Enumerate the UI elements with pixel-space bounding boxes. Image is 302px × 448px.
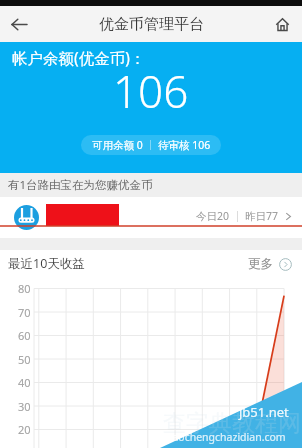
staticText: 今日20 — [196, 209, 230, 223]
staticText: 40 — [18, 375, 31, 390]
staticText: 有1台路由宝在为您赚优金币 — [8, 177, 153, 193]
button[interactable]: Home — [262, 6, 302, 42]
staticText: 60 — [18, 328, 31, 343]
staticText: 可用余额 0 — [92, 138, 143, 152]
staticText: 70 — [18, 305, 31, 320]
staticText: 查字典教程网 — [163, 409, 301, 438]
button[interactable]: 更多 — [248, 256, 302, 272]
staticText: 80 — [18, 281, 31, 296]
staticText: 优金币管理平台 — [99, 15, 204, 34]
staticText: 20 — [18, 422, 31, 437]
staticText: 更多 — [248, 256, 273, 272]
staticText: 106 — [113, 61, 189, 121]
staticText: 30 — [18, 399, 31, 414]
button[interactable]: 今日20 — [0, 197, 302, 238]
staticText: 50 — [18, 352, 31, 367]
staticText: 昨日77 — [245, 209, 279, 223]
staticText: jiaochengchazidian.com — [167, 430, 286, 444]
button[interactable]: Back — [0, 6, 38, 42]
button[interactable]: 可用余额 0 — [81, 135, 221, 155]
staticText: 帐户余额(优金币)： — [12, 47, 146, 68]
staticText: jb51.net — [239, 403, 289, 421]
staticText: 待审核 106 — [158, 138, 211, 152]
staticText: 最近10天收益 — [8, 255, 85, 272]
